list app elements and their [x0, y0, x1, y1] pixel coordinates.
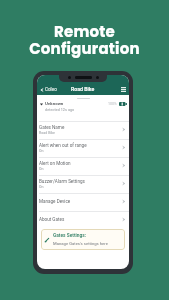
staticText: Coleo [45, 87, 57, 92]
staticText: Road Bike [39, 131, 55, 135]
staticText: On [39, 167, 44, 171]
staticText: Gates Settings: [53, 233, 87, 239]
staticText: Configuration [29, 38, 140, 59]
button[interactable]: Gates Settings: [41, 229, 125, 250]
button[interactable]: Alert when out of range [37, 140, 129, 157]
staticText: detected 12s ago [45, 107, 75, 111]
button[interactable]: About Gates [37, 212, 129, 229]
staticText: On [39, 149, 44, 153]
button[interactable]: Coleo [37, 86, 60, 93]
staticText: 100% [108, 102, 117, 106]
staticText: Gates Name [39, 125, 65, 130]
staticText: Buzzer/Alarm Settings [39, 179, 85, 184]
staticText: Manage Gates's settings here [53, 241, 108, 246]
staticText: On [39, 185, 44, 189]
staticText: Alert when out of range [39, 143, 87, 148]
button[interactable]: Manage Device [37, 194, 129, 211]
staticText: Remote [54, 21, 115, 42]
button[interactable]: Menu [118, 85, 129, 94]
staticText: Road Bike [71, 86, 95, 92]
staticText: Unknown [45, 101, 64, 106]
staticText: Manage Device [39, 199, 71, 204]
staticText: About Gates [39, 217, 65, 222]
button[interactable]: Buzzer/Alarm Settings [37, 176, 129, 193]
button[interactable]: Gates Name [37, 122, 129, 139]
staticText: Alert on Motion [39, 161, 71, 166]
button[interactable]: Unknown [37, 99, 129, 121]
button[interactable]: Alert on Motion [37, 158, 129, 175]
